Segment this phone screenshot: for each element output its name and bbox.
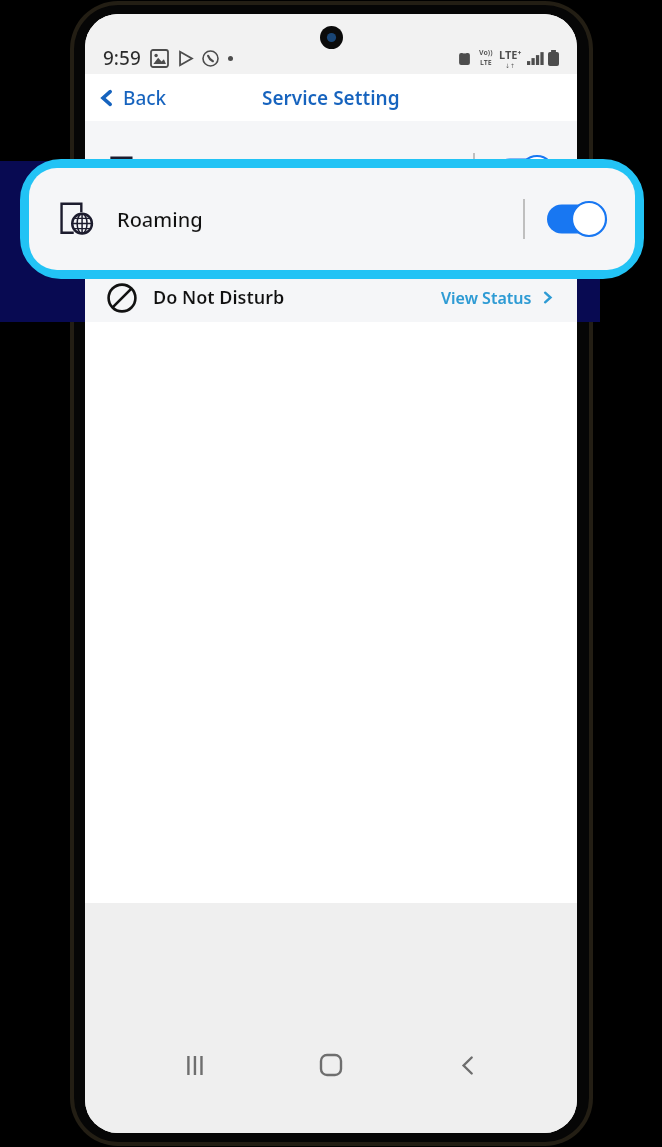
staticText: Do Not Disturb <box>153 257 285 282</box>
staticText: Roaming <box>117 206 203 233</box>
button[interactable]: Roaming toggle <box>547 202 607 236</box>
button[interactable]: Roaming toggle <box>495 156 555 190</box>
button[interactable]: Roaming <box>29 168 635 270</box>
staticText: 9:59 <box>103 45 141 71</box>
button[interactable]: Roaming <box>85 121 577 225</box>
staticText: Vo)) <box>479 48 493 58</box>
button[interactable]: Recents <box>169 1039 221 1091</box>
button[interactable]: Do Not Disturb <box>85 273 577 322</box>
staticText: LTE⁺ <box>499 47 522 62</box>
button[interactable]: Home <box>305 1039 357 1091</box>
staticText: View Status <box>441 259 532 281</box>
staticText: View Status <box>441 287 532 309</box>
button[interactable]: Back <box>97 74 577 121</box>
staticText: Roaming <box>167 200 253 227</box>
staticText: ↓↑ <box>505 62 516 69</box>
button[interactable]: Roaming toggle <box>495 196 555 230</box>
button[interactable]: Roaming <box>85 161 577 265</box>
staticText: Do Not Disturb <box>153 285 285 310</box>
button[interactable]: Do Not Disturb <box>85 233 577 306</box>
staticText: LTE <box>480 58 492 68</box>
staticText: Service Setting <box>262 85 400 111</box>
staticText: Roaming <box>167 160 253 187</box>
staticText: Back <box>123 85 167 111</box>
button[interactable]: Back <box>441 1039 493 1091</box>
other: Back <box>97 88 117 108</box>
